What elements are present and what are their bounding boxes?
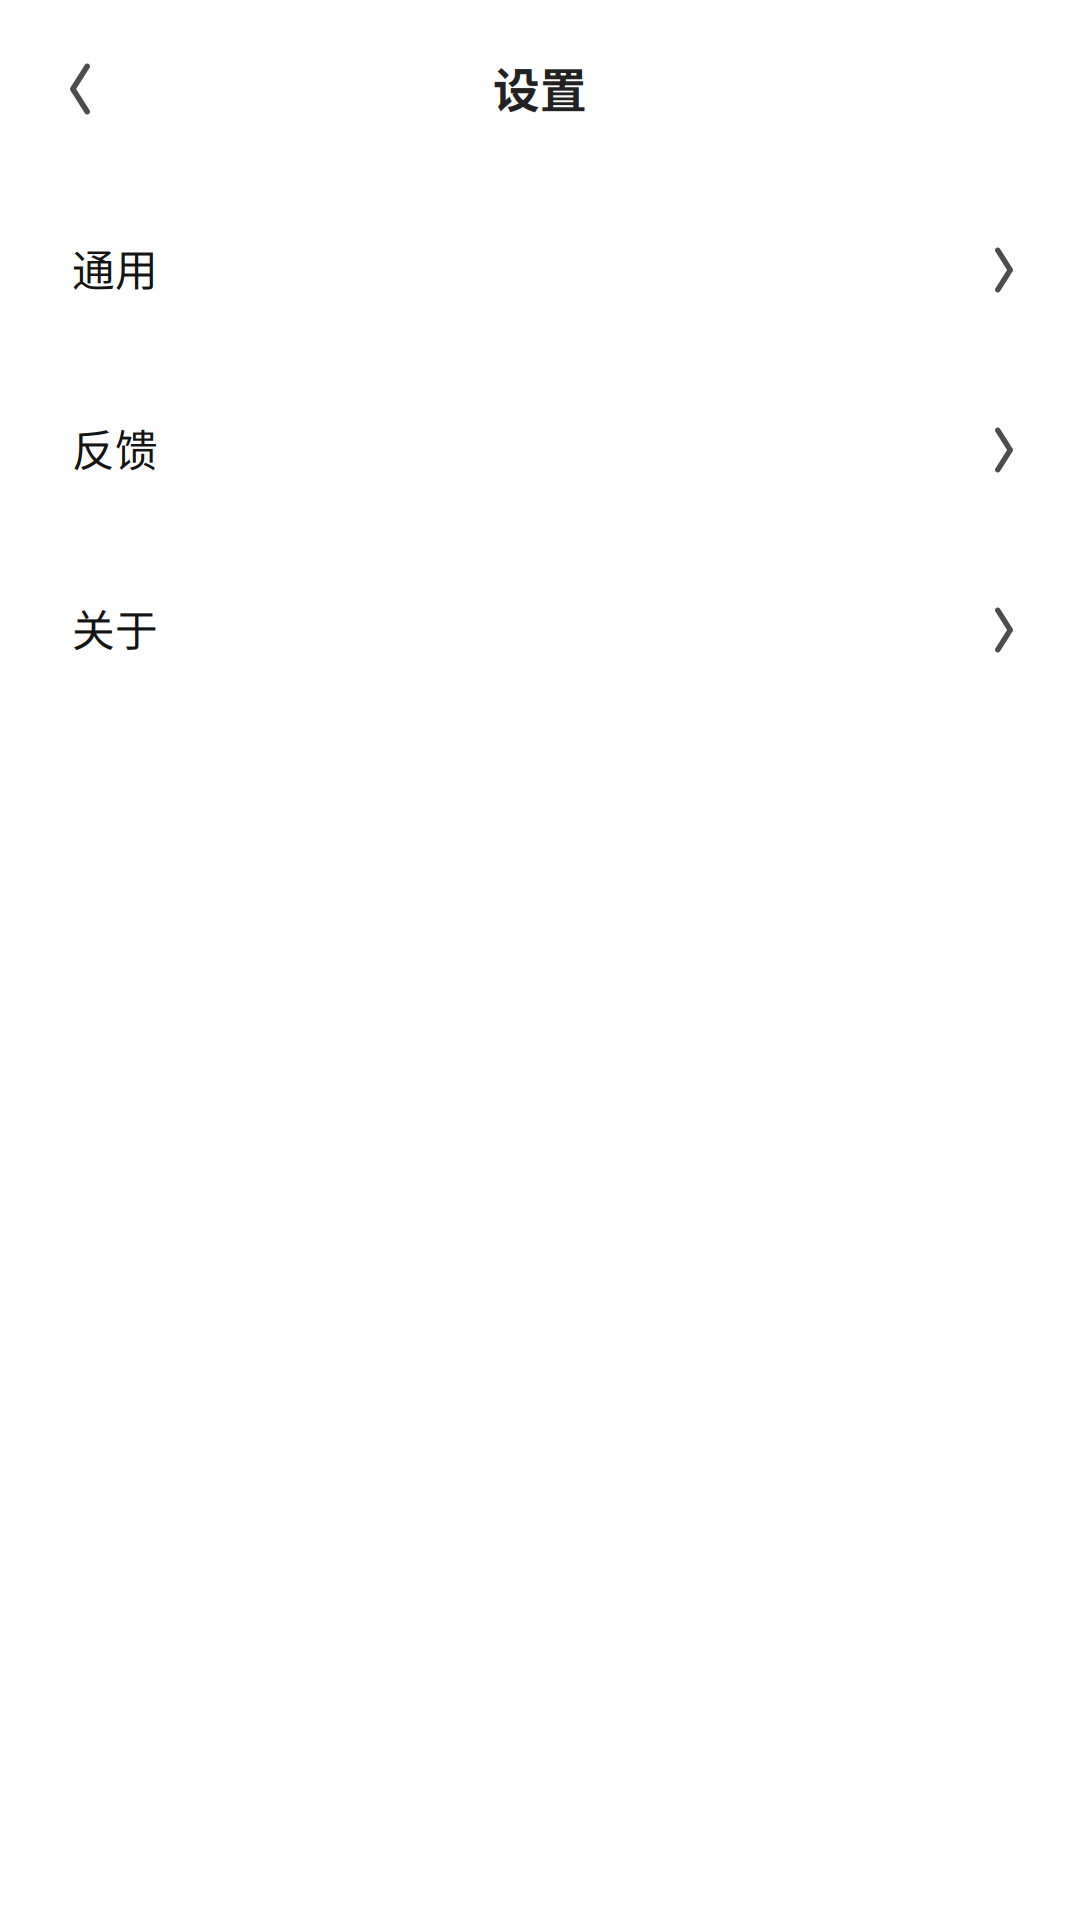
button[interactable]: 关于 <box>0 538 1080 718</box>
button[interactable]: Back <box>0 29 130 149</box>
staticText: 反馈 <box>72 417 158 479</box>
staticText: 关于 <box>72 597 158 659</box>
staticText: 通用 <box>72 237 158 299</box>
staticText: 设置 <box>493 53 587 121</box>
button[interactable]: 通用 <box>0 178 1080 358</box>
button[interactable]: 反馈 <box>0 358 1080 538</box>
